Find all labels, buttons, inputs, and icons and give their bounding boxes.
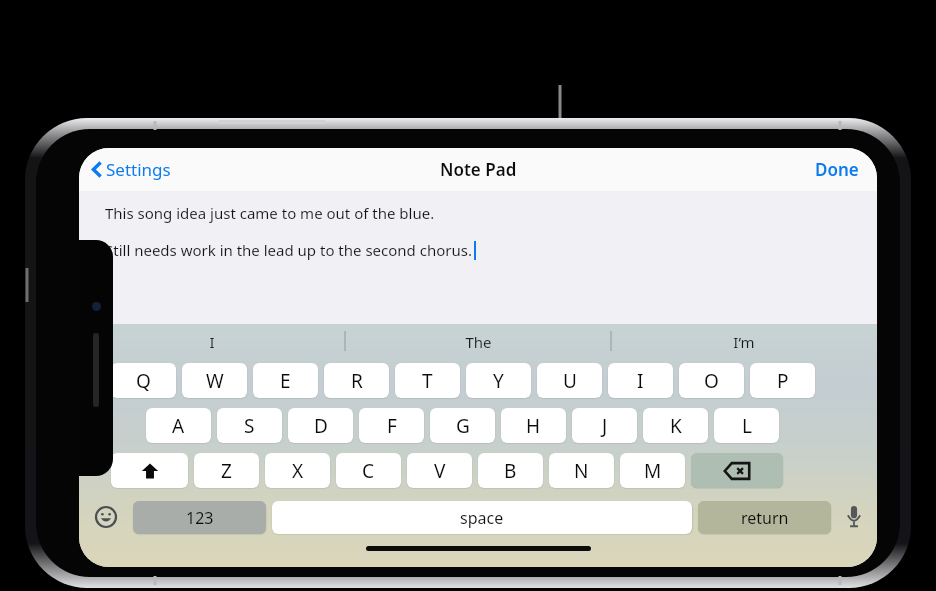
staticText: Z	[221, 458, 232, 484]
button[interactable]: R	[324, 363, 389, 398]
button[interactable]: V	[407, 453, 472, 488]
staticText: U	[563, 368, 577, 394]
staticText: V	[434, 458, 446, 484]
staticText: N	[574, 458, 589, 484]
button[interactable]: B	[478, 453, 543, 488]
button[interactable]: I’m	[611, 324, 877, 360]
button[interactable]: F	[359, 408, 424, 443]
staticText: O	[704, 368, 719, 394]
button[interactable]: Dictation	[831, 496, 877, 538]
staticText: return	[741, 507, 789, 529]
button[interactable]: Y	[466, 363, 531, 398]
staticText: C	[362, 458, 375, 484]
button[interactable]: The	[345, 324, 611, 360]
staticText: Done	[815, 158, 859, 181]
staticText: G	[456, 413, 470, 439]
button[interactable]: Emoji	[79, 496, 133, 538]
staticText: The	[465, 332, 492, 352]
staticText: I	[637, 368, 644, 394]
button[interactable]: I	[608, 363, 673, 398]
button[interactable]: U	[537, 363, 602, 398]
staticText: Settings	[106, 158, 171, 181]
staticText: M	[644, 458, 662, 484]
staticText: Y	[493, 368, 504, 394]
button[interactable]: space	[272, 501, 692, 534]
button[interactable]: D	[288, 408, 353, 443]
staticText: A	[172, 413, 185, 439]
staticText: E	[280, 368, 291, 394]
staticText: I’m	[733, 332, 755, 352]
staticText: F	[387, 413, 397, 439]
staticText: J	[602, 413, 608, 439]
button[interactable]: A	[146, 408, 211, 443]
staticText: space	[460, 507, 504, 529]
staticText: R	[351, 368, 363, 394]
button[interactable]: N	[549, 453, 614, 488]
staticText: I	[209, 332, 215, 352]
button[interactable]: return	[698, 501, 831, 534]
button[interactable]: Settings	[85, 153, 177, 186]
staticText: K	[670, 413, 682, 439]
button[interactable]: M	[620, 453, 685, 488]
button[interactable]: X	[265, 453, 330, 488]
staticText: Q	[136, 368, 151, 394]
button[interactable]: S	[217, 408, 282, 443]
button[interactable]: G	[430, 408, 495, 443]
button[interactable]: Backspace	[691, 453, 783, 488]
button[interactable]: P	[750, 363, 815, 398]
staticText: L	[742, 413, 752, 439]
button[interactable]: W	[182, 363, 247, 398]
button[interactable]: 123	[133, 501, 266, 534]
button[interactable]: L	[714, 408, 779, 443]
staticText: D	[314, 413, 328, 439]
button[interactable]: Q	[111, 363, 176, 398]
button[interactable]: T	[395, 363, 460, 398]
staticText: B	[504, 458, 517, 484]
button[interactable]: K	[643, 408, 708, 443]
staticText: Still needs work in the lead up to the s…	[105, 240, 472, 260]
staticText: Note Pad	[440, 158, 517, 181]
staticText: S	[244, 413, 255, 439]
staticText: X	[292, 458, 304, 484]
staticText: W	[206, 368, 224, 394]
button[interactable]: This song idea just came to me out of th…	[79, 191, 877, 324]
button[interactable]: O	[679, 363, 744, 398]
button[interactable]: Done	[807, 153, 867, 186]
staticText: H	[526, 413, 541, 439]
button[interactable]: Shift	[111, 453, 188, 488]
button[interactable]: H	[501, 408, 566, 443]
staticText: T	[422, 368, 433, 394]
button[interactable]: I	[79, 324, 345, 360]
button[interactable]: J	[572, 408, 637, 443]
staticText: P	[777, 368, 789, 394]
button[interactable]: C	[336, 453, 401, 488]
staticText: 123	[186, 507, 214, 529]
staticText: This song idea just came to me out of th…	[105, 203, 435, 223]
button[interactable]: Z	[194, 453, 259, 488]
button[interactable]: E	[253, 363, 318, 398]
